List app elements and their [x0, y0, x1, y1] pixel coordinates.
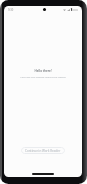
staticText: Let's get you started using your device	[4, 75, 82, 78]
staticText: 9:30	[8, 8, 14, 12]
button[interactable]: Continue in Work Reader	[21, 147, 65, 154]
staticText: Hello there!	[4, 69, 82, 73]
staticText: Continue in Work Reader	[25, 149, 61, 153]
